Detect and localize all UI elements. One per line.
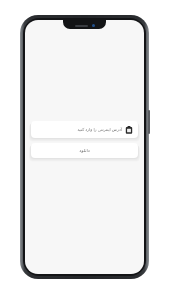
staticText: دانلود — [79, 148, 90, 153]
staticText: آدرس اینترنتی را وارد کنید — [77, 127, 122, 133]
button[interactable]: آدرس اینترنتی را وارد کنید — [31, 121, 138, 138]
other: Paste URL from clipboard — [125, 126, 133, 134]
button[interactable]: دانلود — [31, 143, 138, 158]
